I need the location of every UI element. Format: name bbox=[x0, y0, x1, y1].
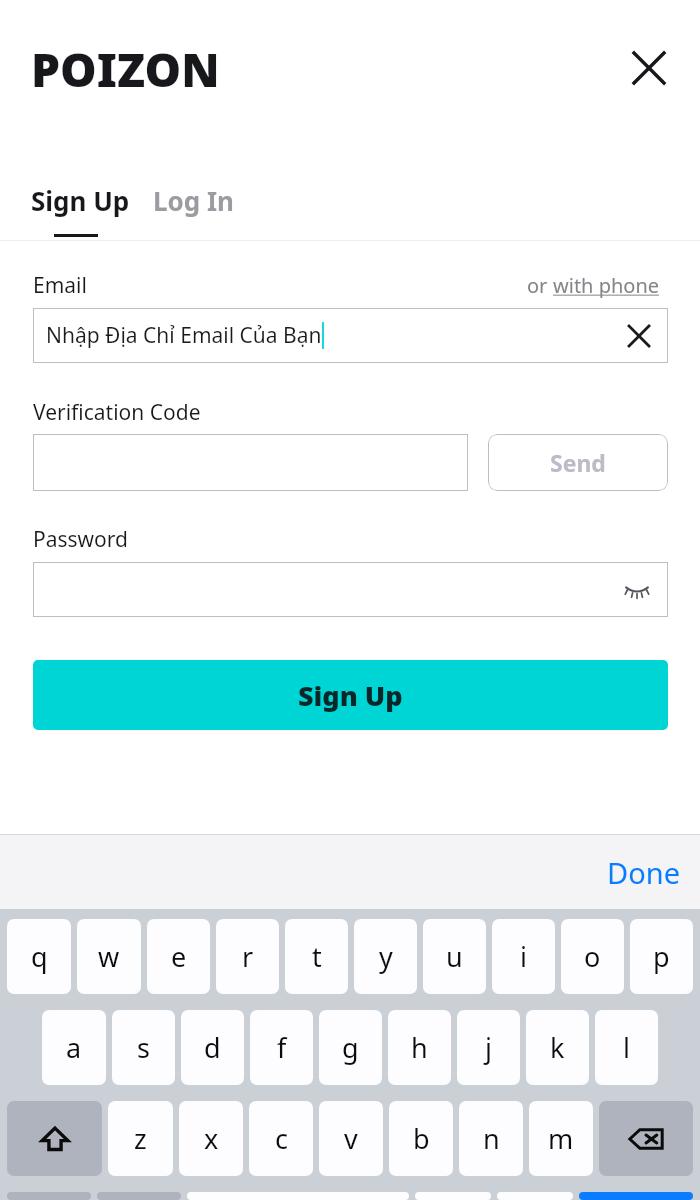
staticText: Email bbox=[33, 271, 87, 300]
staticText: u bbox=[446, 938, 463, 975]
button[interactable]: Send bbox=[488, 434, 668, 491]
staticText: y bbox=[379, 938, 393, 975]
staticText: a bbox=[66, 1029, 82, 1066]
staticText: Password bbox=[33, 525, 128, 554]
button[interactable]: y bbox=[354, 919, 417, 994]
staticText: j bbox=[485, 1029, 492, 1066]
staticText: k bbox=[550, 1029, 565, 1066]
staticText: with phone bbox=[553, 272, 660, 299]
button[interactable]: h bbox=[388, 1010, 451, 1085]
button[interactable]: Numbers bbox=[7, 1192, 91, 1200]
button[interactable]: Log In bbox=[153, 183, 234, 218]
staticText: o bbox=[584, 938, 601, 975]
button[interactable]: b bbox=[389, 1101, 453, 1176]
staticText: i bbox=[520, 938, 527, 975]
button[interactable]: Nhập Địa Chỉ Email Của Bạn bbox=[33, 308, 668, 363]
staticText: x bbox=[204, 1120, 219, 1157]
button[interactable] bbox=[33, 434, 468, 491]
button[interactable]: k bbox=[526, 1010, 589, 1085]
button[interactable]: v bbox=[319, 1101, 383, 1176]
button[interactable]: or bbox=[527, 272, 660, 299]
button[interactable]: u bbox=[423, 919, 486, 994]
button[interactable]: Dot bbox=[497, 1192, 573, 1200]
staticText: m bbox=[548, 1120, 574, 1157]
staticText: Sign Up bbox=[31, 183, 130, 218]
button[interactable]: o bbox=[561, 919, 624, 994]
staticText: g bbox=[342, 1029, 359, 1066]
staticText: p bbox=[653, 938, 670, 975]
button[interactable]: w bbox=[77, 919, 141, 994]
staticText: w bbox=[98, 938, 120, 975]
button[interactable]: Emoji bbox=[97, 1192, 181, 1200]
staticText: r bbox=[242, 938, 254, 975]
staticText: or bbox=[527, 272, 553, 299]
button[interactable]: j bbox=[457, 1010, 520, 1085]
button[interactable]: z bbox=[108, 1101, 173, 1176]
staticText: Verification Code bbox=[33, 398, 201, 427]
staticText: Log In bbox=[153, 183, 234, 218]
button[interactable]: m bbox=[529, 1101, 593, 1176]
staticText: f bbox=[277, 1029, 287, 1066]
button[interactable]: n bbox=[459, 1101, 523, 1176]
staticText: s bbox=[137, 1029, 150, 1066]
button[interactable]: q bbox=[7, 919, 71, 994]
button[interactable]: Shift bbox=[7, 1101, 102, 1176]
staticText: t bbox=[312, 938, 322, 975]
staticText: e bbox=[171, 938, 187, 975]
button[interactable]: Clear text bbox=[618, 315, 660, 357]
button[interactable]: t bbox=[285, 919, 348, 994]
button[interactable]: s bbox=[112, 1010, 175, 1085]
button[interactable]: Backspace bbox=[599, 1101, 693, 1176]
staticText: z bbox=[134, 1120, 147, 1157]
staticText: Nhập Địa Chỉ Email Của Bạn bbox=[46, 321, 322, 350]
button[interactable]: At bbox=[415, 1192, 491, 1200]
staticText: h bbox=[411, 1029, 428, 1066]
staticText: n bbox=[483, 1120, 500, 1157]
button[interactable]: Sign Up bbox=[31, 183, 130, 218]
staticText: Done bbox=[607, 853, 680, 892]
button[interactable]: Done bbox=[607, 853, 680, 892]
button[interactable]: f bbox=[250, 1010, 313, 1085]
button[interactable]: Close bbox=[620, 39, 678, 97]
button[interactable]: r bbox=[216, 919, 279, 994]
button[interactable]: Show password bbox=[33, 562, 668, 617]
button[interactable]: e bbox=[147, 919, 210, 994]
staticText: d bbox=[204, 1029, 221, 1066]
button[interactable]: a bbox=[42, 1010, 106, 1085]
button[interactable]: Go bbox=[579, 1192, 693, 1200]
staticText: Send bbox=[550, 447, 606, 478]
button[interactable]: i bbox=[492, 919, 555, 994]
staticText: POIZON bbox=[31, 38, 220, 101]
button[interactable]: Sign Up bbox=[33, 660, 668, 730]
staticText: q bbox=[31, 938, 48, 975]
button[interactable]: x bbox=[179, 1101, 243, 1176]
staticText: c bbox=[275, 1120, 288, 1157]
button[interactable]: c bbox=[249, 1101, 313, 1176]
button[interactable]: Show password bbox=[616, 569, 658, 611]
button[interactable]: p bbox=[630, 919, 693, 994]
button[interactable]: Space bbox=[187, 1192, 409, 1200]
button[interactable]: g bbox=[319, 1010, 382, 1085]
staticText: Sign Up bbox=[298, 677, 403, 714]
staticText: b bbox=[413, 1120, 430, 1157]
staticText: l bbox=[623, 1029, 630, 1066]
button[interactable]: d bbox=[181, 1010, 244, 1085]
button[interactable]: l bbox=[595, 1010, 658, 1085]
staticText: v bbox=[344, 1120, 358, 1157]
